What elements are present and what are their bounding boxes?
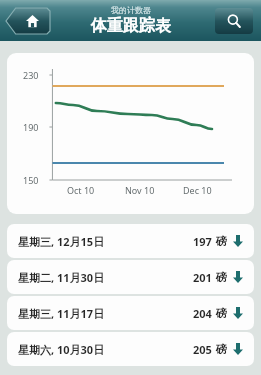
staticText: 星期六, 10月30日 — [18, 342, 105, 357]
button[interactable]: Search — [215, 8, 253, 34]
staticText: 190 — [23, 121, 39, 133]
staticText: 205 — [193, 342, 212, 357]
button[interactable]: 星期二, 11月30日 — [7, 260, 254, 294]
staticText: 197 — [193, 234, 212, 249]
button[interactable]: 星期三, 11月17日 — [7, 296, 254, 330]
staticText: 204 — [193, 306, 212, 321]
staticText: 磅 — [216, 306, 227, 320]
staticText: Dec 10 — [183, 184, 212, 196]
staticText: 230 — [23, 69, 39, 81]
staticText: 磅 — [216, 342, 227, 356]
button[interactable]: 星期六, 10月30日 — [7, 332, 254, 366]
staticText: 星期二, 11月30日 — [18, 270, 105, 285]
staticText: 磅 — [216, 234, 227, 248]
staticText: 星期三, 11月17日 — [18, 306, 105, 321]
staticText: 星期三, 12月15日 — [18, 234, 105, 249]
button[interactable]: Home — [6, 8, 50, 34]
staticText: 磅 — [216, 270, 227, 284]
staticText: 201 — [193, 270, 212, 285]
staticText: 150 — [23, 174, 39, 186]
staticText: 体重跟踪表 — [91, 16, 171, 36]
button[interactable]: 星期三, 12月15日 — [7, 224, 254, 258]
staticText: 我的计数器 — [111, 5, 151, 15]
staticText: Oct 10 — [67, 184, 95, 196]
staticText: Nov 10 — [125, 184, 155, 196]
